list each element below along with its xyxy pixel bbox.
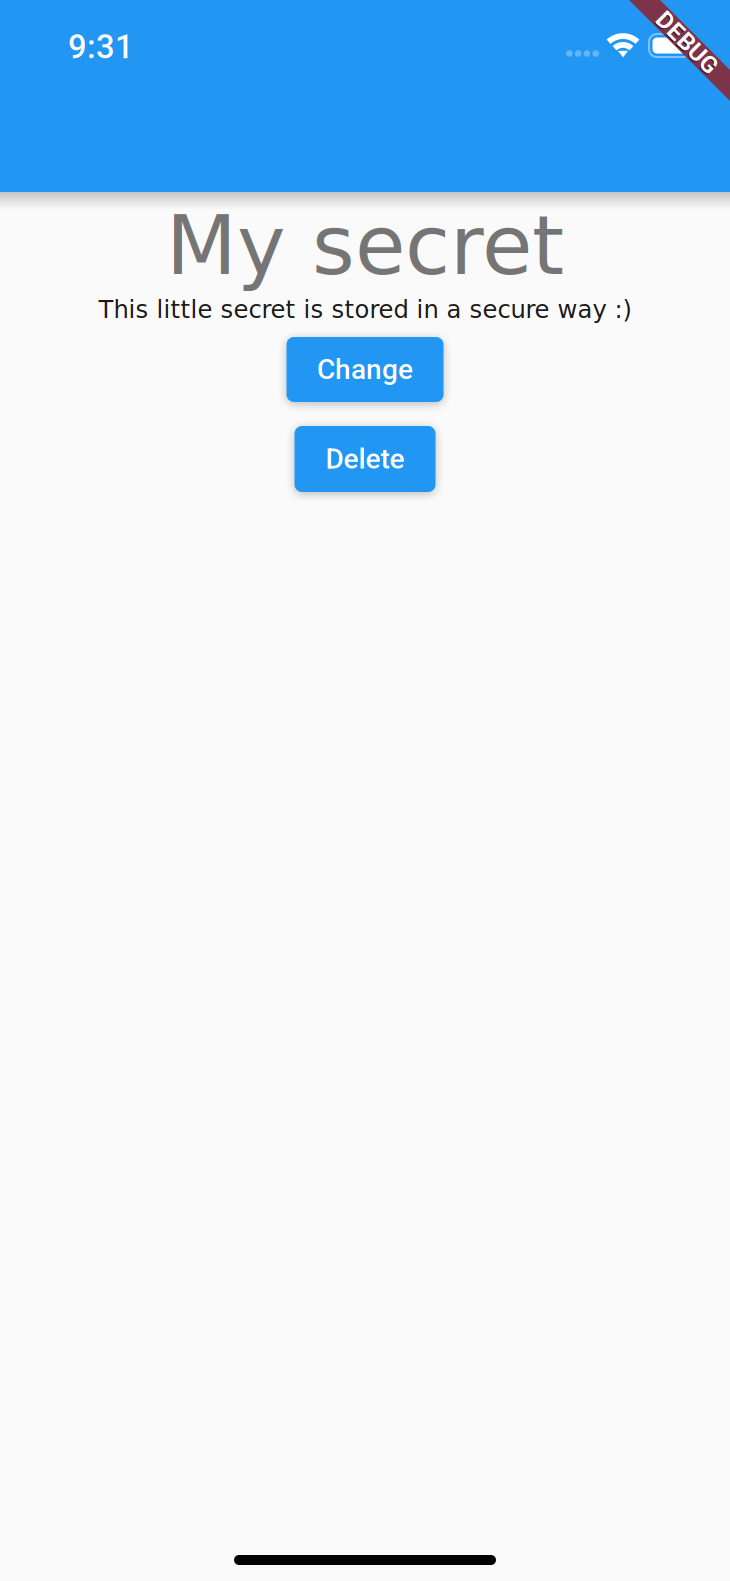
button[interactable]: Change — [286, 337, 443, 402]
staticText: DEBUG — [648, 28, 725, 56]
staticText: Delete — [325, 443, 404, 475]
staticText: My secret — [166, 198, 564, 293]
staticText: 9:31 — [68, 28, 134, 66]
button[interactable]: Delete — [294, 426, 435, 492]
staticText: This little secret is stored in a secure… — [98, 295, 631, 324]
staticText: DEBUG — [648, 30, 725, 58]
staticText: Change — [317, 353, 413, 386]
